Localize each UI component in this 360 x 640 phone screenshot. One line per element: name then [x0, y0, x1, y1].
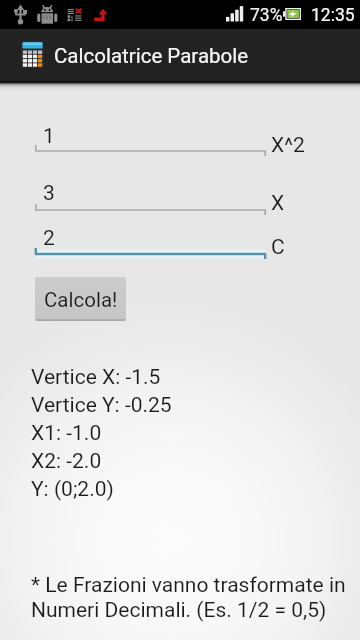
button[interactable]: X^2 [271, 133, 305, 158]
staticText: Calcolatrice Parabole [54, 44, 249, 68]
staticText: 2 [43, 226, 55, 251]
staticText: 12:35 [311, 5, 355, 26]
staticText: Numeri Decimali. (Es. 1/2 = 0,5) [31, 598, 327, 623]
button[interactable]: X [271, 191, 285, 216]
staticText: X [271, 191, 285, 216]
staticText: X2: -2.0 [31, 449, 102, 474]
staticText: Y: (0;2.0) [31, 477, 114, 502]
staticText: X1: -1.0 [31, 421, 102, 446]
staticText: 73% [250, 5, 283, 26]
button[interactable]: Calcola! [35, 277, 126, 321]
button[interactable]: C [271, 235, 285, 260]
button[interactable]: 1 [43, 124, 268, 149]
button[interactable]: 3 [43, 181, 268, 206]
staticText: * Le Frazioni vanno trasformate in [31, 573, 346, 598]
staticText: Vertice Y: -0.25 [31, 393, 172, 418]
button[interactable]: App icon [0, 29, 218, 81]
staticText: X^2 [271, 133, 305, 158]
button[interactable]: 2 [43, 226, 268, 251]
staticText: Vertice X: -1.5 [31, 365, 161, 390]
staticText: 3 [43, 181, 55, 206]
other: App icon [21, 40, 44, 68]
staticText: Calcola! [44, 288, 118, 312]
staticText: C [271, 235, 285, 260]
staticText: 1 [43, 124, 55, 149]
